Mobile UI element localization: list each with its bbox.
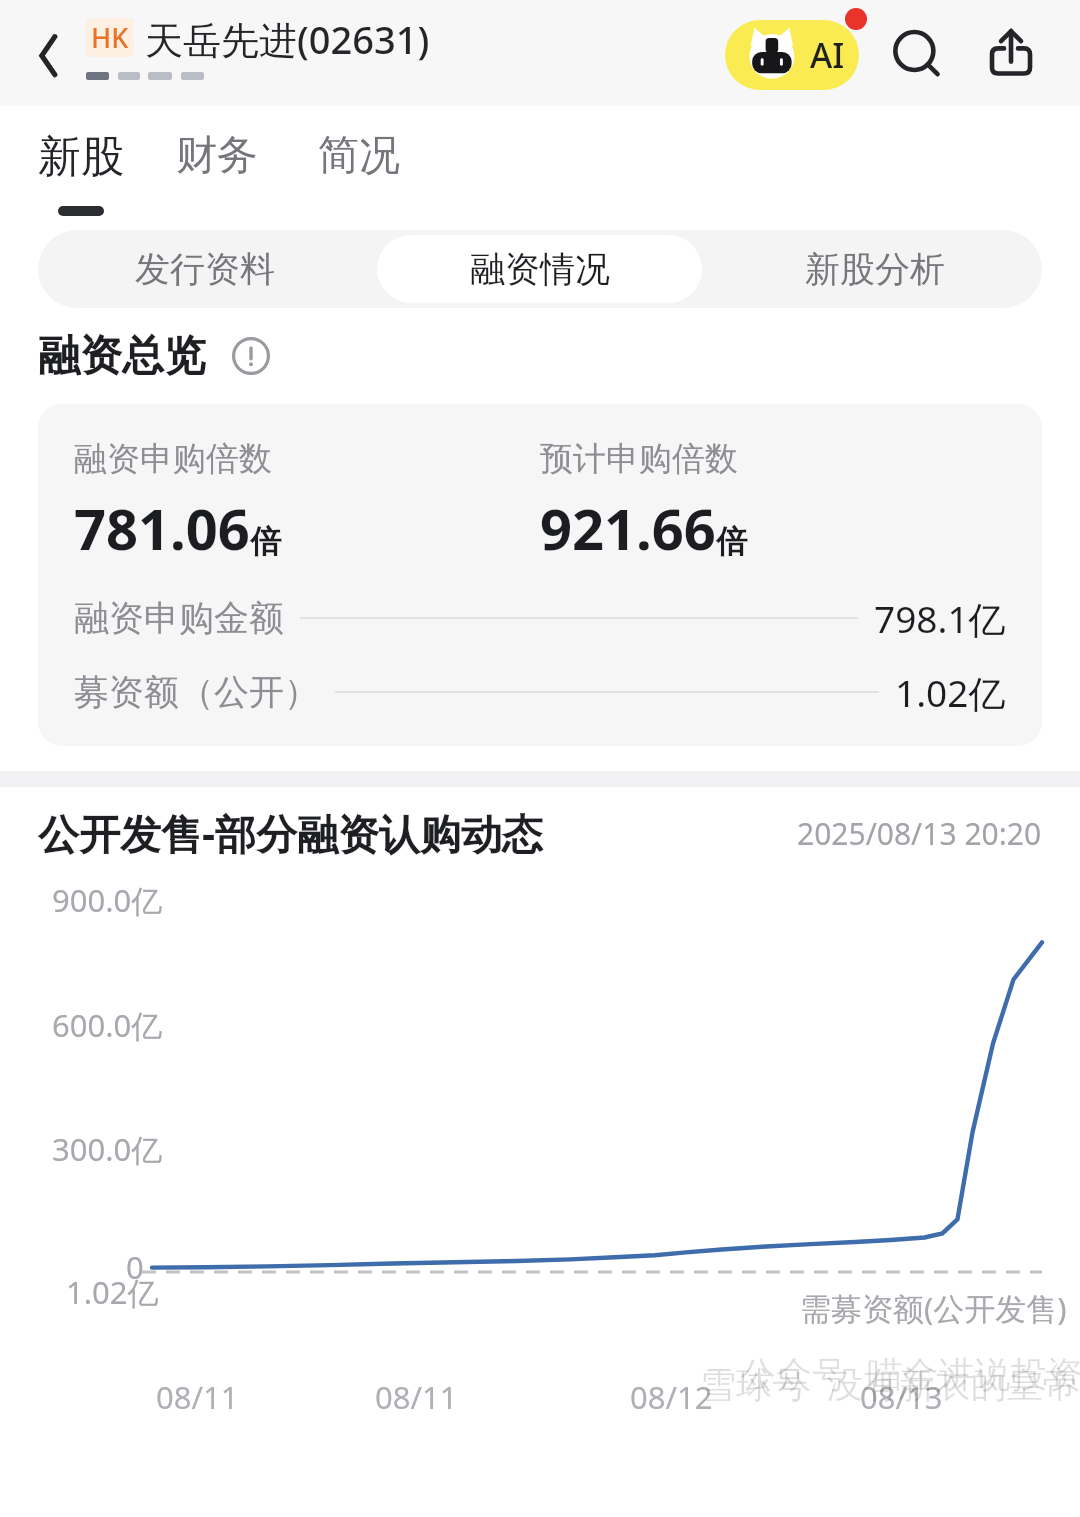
button[interactable]: 新股 [30,124,132,222]
button[interactable]: 新股分析 [707,230,1042,308]
staticText: 发行资料 [135,247,275,291]
staticText: 募资额（公开） [74,670,319,714]
staticText: 公开发售-部分融资认购动态 [38,805,544,861]
staticText: 08/12 [630,1376,713,1418]
staticText: 需募资额(公开发售) [800,1287,1067,1329]
staticText: 08/11 [375,1376,458,1418]
button[interactable]: 发行资料 [38,230,372,308]
staticText: 融资情况 [470,247,610,291]
staticText: 财务 [176,130,258,182]
staticText: 天岳先进(02631) [145,13,430,65]
staticText: 融资申购倍数 [74,438,272,480]
staticText: 倍 [250,522,281,561]
staticText: AI [810,32,845,78]
staticText: 雪球号 没有新衣的皇帝 [700,1359,1079,1408]
staticText: 预计申购倍数 [540,438,738,480]
button[interactable]: AI assistant [725,20,859,90]
staticText: 300.0亿 [52,1128,163,1170]
staticText: 2025/08/13 20:20 [797,813,1042,854]
staticText: 新股分析 [805,247,945,291]
staticText: 900.0亿 [52,879,163,921]
staticText: 融资申购金额 [74,596,284,640]
staticText: 781.06 [74,490,250,566]
staticText: HK [91,19,129,56]
staticText: 倍 [716,522,747,561]
staticText: 新股 [38,130,124,184]
staticText: 798.1亿 [874,593,1006,644]
staticText: 融资总览 [38,330,206,383]
staticText: 简况 [318,130,400,182]
staticText: 0 [126,1246,144,1288]
staticText: 公众号 喵金讲说投资 [740,1349,1080,1398]
staticText: 1.02亿 [66,1271,159,1313]
button[interactable]: Back [14,20,80,86]
button[interactable]: 简况 [310,124,408,188]
button[interactable]: 融资情况 [377,235,702,303]
button[interactable]: 财务 [168,124,266,188]
button[interactable]: Share [980,22,1046,88]
button[interactable]: Search [884,22,950,88]
staticText: 08/11 [156,1376,239,1418]
staticText: 1.02亿 [895,667,1006,718]
button[interactable]: Info [228,333,274,379]
staticText: 921.66 [540,490,716,566]
staticText: 600.0亿 [52,1004,163,1046]
staticText: 08/13 [860,1376,943,1418]
